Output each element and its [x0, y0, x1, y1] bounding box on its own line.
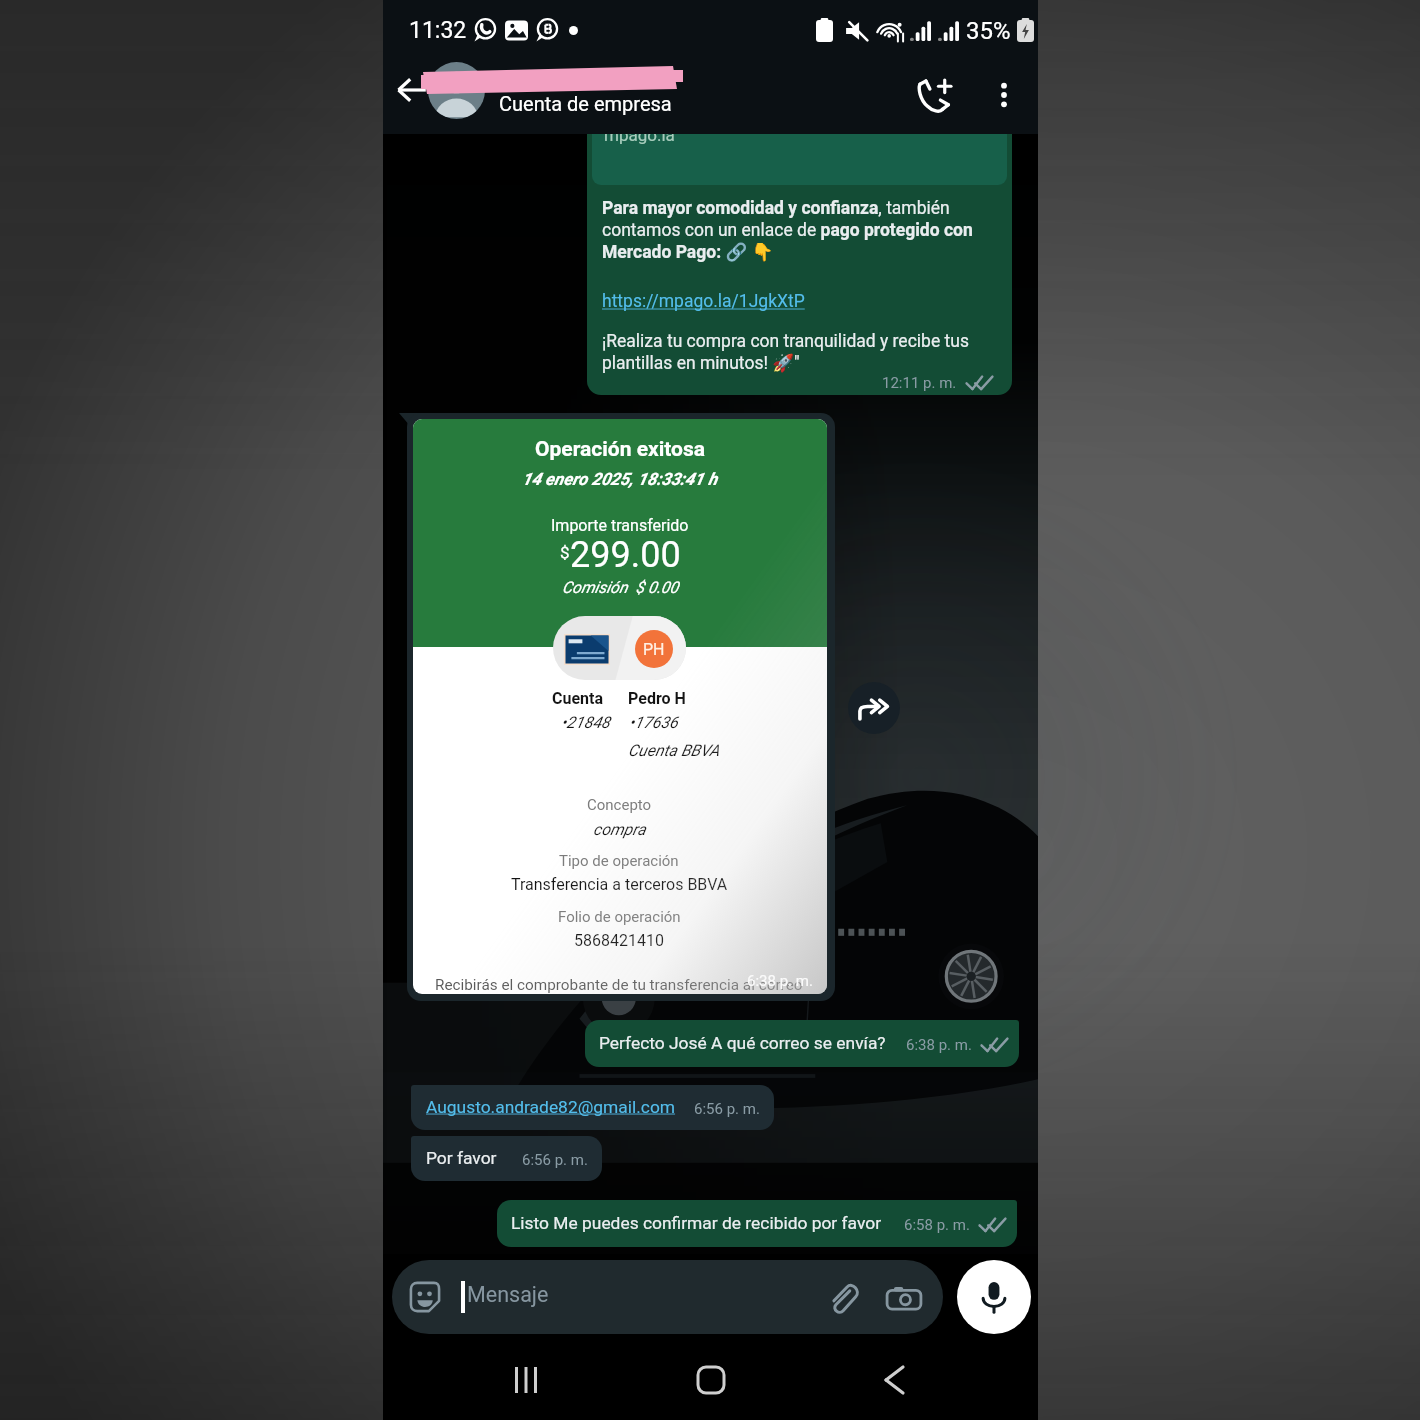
staticText: 6:38 p. m. [906, 1036, 972, 1054]
button[interactable]: More options [978, 69, 1030, 121]
button[interactable]: Forward [848, 682, 900, 734]
staticText: Concepto [587, 796, 652, 814]
button[interactable]: Listo Me puedes confirmar de recibido po… [497, 1200, 1017, 1247]
staticText: mpago.la [604, 134, 675, 145]
staticText: Folio de operación [558, 908, 681, 926]
button[interactable]: Attach [826, 1281, 859, 1314]
staticText: Cuenta [552, 689, 604, 708]
staticText: •21848 [561, 713, 610, 732]
staticText: Por favor [426, 1148, 497, 1168]
button[interactable]: Back [864, 1350, 924, 1410]
staticText: Perfecto José A qué correo se envía? [599, 1033, 886, 1053]
staticText: 299.00 [570, 534, 681, 576]
staticText: Operación exitosa [535, 437, 706, 462]
staticText: Augusto.andrade82@gmail.com [426, 1097, 676, 1117]
staticText: compra [593, 820, 646, 839]
staticText: 6:56 p. m. [522, 1151, 588, 1169]
button[interactable]: Augusto.andrade82@gmail.com [411, 1085, 774, 1130]
button[interactable]: Recents [496, 1350, 556, 1410]
button[interactable]: Contact photo [428, 62, 485, 119]
staticText: Transferencia a terceros BBVA [511, 875, 728, 894]
staticText: Pedro H [628, 689, 686, 708]
button[interactable]: Home [681, 1350, 741, 1410]
staticText: Para mayor comodidad y confianza, tambié… [602, 198, 982, 262]
button[interactable]: Perfecto José A qué correo se envía? [585, 1020, 1019, 1067]
button[interactable]: mpago.la [587, 134, 1012, 395]
staticText: 11:32 [409, 17, 467, 44]
staticText: Listo Me puedes confirmar de recibido po… [511, 1213, 882, 1233]
staticText: 6:58 p. m. [904, 1216, 970, 1234]
staticText: Mensaje [467, 1282, 549, 1307]
staticText: $ [560, 542, 570, 562]
staticText: 12:11 p. m. [882, 374, 957, 392]
button[interactable]: Camera [886, 1281, 922, 1317]
staticText: PH [643, 640, 665, 659]
staticText: •17636 [629, 713, 678, 732]
staticText: 35% [966, 17, 1011, 45]
button[interactable]: Por favor [411, 1136, 602, 1181]
button[interactable]: Back [385, 63, 439, 117]
button[interactable]: Operación exitosa [413, 419, 827, 994]
staticText: 14 enero 2025, 18:33:41 h [522, 469, 718, 489]
staticText: 5868421410 [574, 931, 664, 950]
staticText: https://mpago.la/1JgkXtP [602, 291, 805, 312]
staticText: 6:38 p. m. [747, 972, 813, 990]
staticText: Cuenta de empresa [499, 92, 672, 115]
staticText: 6:56 p. m. [694, 1100, 760, 1118]
button[interactable]: Video call [905, 66, 963, 124]
staticText: Importe transferido [551, 516, 689, 535]
staticText: ¡Realiza tu compra con tranquilidad y re… [602, 331, 974, 373]
staticText: Recibirás el comprobante de tu transfere… [435, 976, 803, 994]
staticText: Tipo de operación [559, 852, 679, 870]
button[interactable]: Voice message [957, 1260, 1031, 1334]
button[interactable]: Mensaje [392, 1260, 943, 1334]
staticText: Cuenta BBVA [628, 741, 720, 760]
staticText: Comisión $ 0.00 [562, 578, 679, 597]
